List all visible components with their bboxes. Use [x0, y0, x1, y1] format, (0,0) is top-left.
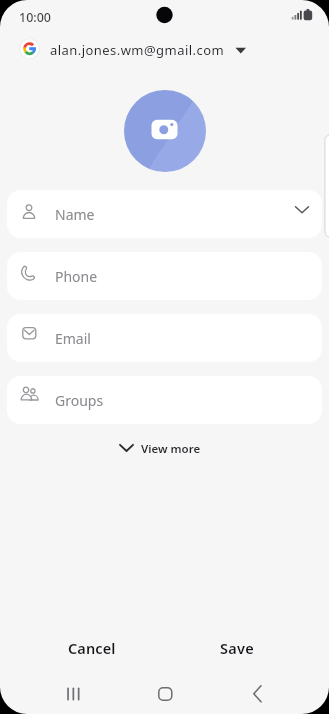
staticText: Email	[55, 329, 91, 348]
staticText: Groups	[55, 391, 104, 410]
staticText: Name	[55, 205, 95, 224]
staticText: Save	[220, 638, 255, 658]
button[interactable]	[124, 90, 206, 172]
button[interactable]: Phone	[7, 252, 322, 300]
button[interactable]	[143, 678, 187, 710]
staticText: alan.jones.wm@gmail.com	[50, 41, 225, 59]
staticText: Phone	[55, 267, 98, 286]
button[interactable]: Name	[7, 190, 322, 238]
button[interactable]: Groups	[7, 376, 322, 424]
button[interactable]	[235, 678, 279, 710]
staticText: Cancel	[68, 638, 116, 658]
button[interactable]: View more	[110, 436, 212, 460]
button[interactable]: Email	[7, 314, 322, 362]
button[interactable]: Save	[172, 630, 302, 666]
button[interactable]	[12, 36, 252, 62]
staticText: View more	[141, 441, 201, 457]
button[interactable]	[51, 678, 95, 710]
staticText: 10:00	[19, 9, 52, 26]
button[interactable]: Cancel	[27, 630, 157, 666]
